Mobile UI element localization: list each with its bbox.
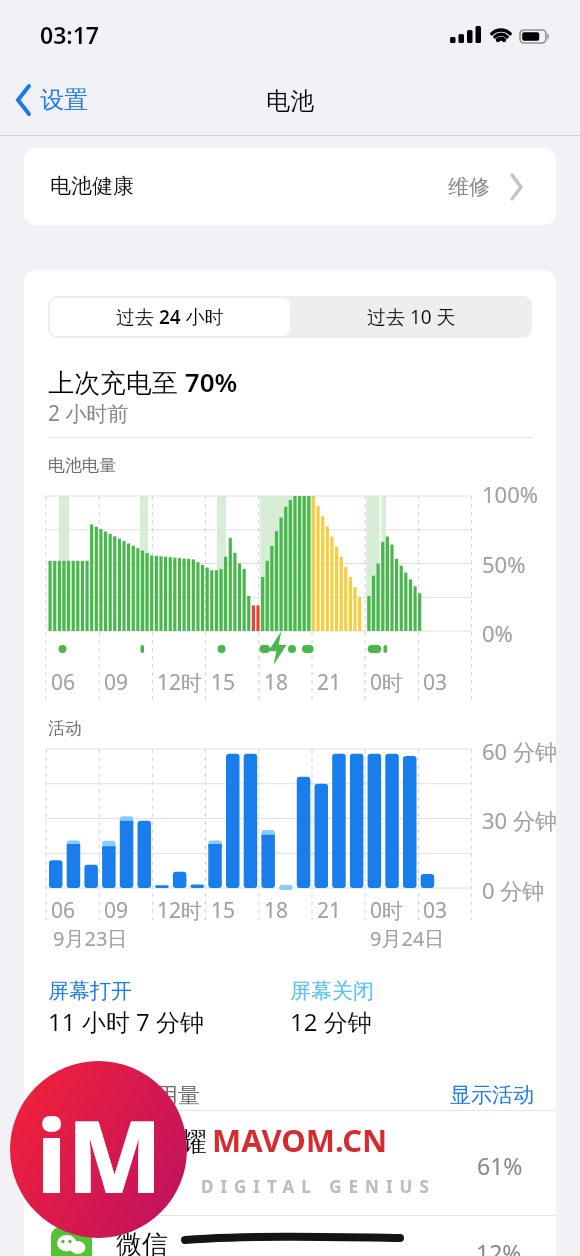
- staticText: 电池健康: [50, 173, 134, 199]
- button[interactable]: 微信: [24, 1216, 556, 1256]
- staticText: 21: [317, 896, 342, 925]
- staticText: DIGITAL GENIUS: [201, 1175, 436, 1198]
- staticText: 61%: [477, 1150, 523, 1181]
- staticText: 0%: [482, 618, 513, 648]
- staticText: 50%: [482, 549, 526, 579]
- staticText: 电池: [266, 86, 314, 116]
- staticText: 维修: [448, 174, 490, 200]
- staticText: MAVOM.CN: [212, 1119, 388, 1161]
- staticText: 100%: [482, 479, 539, 509]
- staticText: 03:17: [40, 19, 99, 50]
- staticText: 15: [211, 668, 236, 697]
- staticText: 微信: [116, 1228, 168, 1256]
- staticText: 9月23日: [53, 925, 128, 952]
- staticText: 06: [51, 896, 76, 925]
- staticText: 荣耀: [153, 1125, 207, 1159]
- staticText: 12时: [157, 896, 203, 925]
- staticText: 30 分钟: [482, 805, 556, 835]
- staticText: 0 分钟: [482, 875, 545, 905]
- button[interactable]: 显示活动: [450, 1082, 534, 1108]
- staticText: 60 分钟: [482, 736, 556, 766]
- staticText: 屏幕关闭: [290, 978, 374, 1004]
- staticText: 03: [423, 668, 448, 697]
- button[interactable]: 过去 10 天: [290, 296, 532, 338]
- staticText: 21: [317, 668, 342, 697]
- staticText: 电池电量: [48, 455, 116, 476]
- staticText: 03: [423, 896, 448, 925]
- button[interactable]: 设置: [14, 82, 88, 118]
- staticText: 12 分钟: [290, 1005, 372, 1038]
- staticText: 0时: [370, 668, 404, 697]
- staticText: 12%: [476, 1237, 522, 1256]
- staticText: 显示活动: [450, 1082, 534, 1108]
- staticText: 屏幕打开: [48, 978, 132, 1004]
- button[interactable]: 电池健康: [24, 148, 556, 225]
- staticText: 设置: [40, 85, 88, 115]
- button[interactable]: 过去 24 小时: [50, 298, 290, 336]
- button[interactable]: 荣耀: [24, 1115, 556, 1220]
- staticText: 09: [104, 668, 129, 697]
- staticText: 过去 24 小时: [116, 304, 224, 330]
- staticText: 15: [211, 896, 236, 925]
- staticText: 18: [264, 668, 289, 697]
- staticText: 18: [264, 896, 289, 925]
- staticText: 09: [104, 896, 129, 925]
- staticText: 活动: [48, 718, 82, 739]
- staticText: 11 小时 7 分钟: [48, 1005, 204, 1038]
- staticText: 9月24日: [370, 925, 445, 952]
- staticText: 上次充电至 70%: [48, 364, 238, 400]
- staticText: iM: [36, 1086, 163, 1222]
- staticText: 06: [51, 668, 76, 697]
- staticText: 2 小时前: [48, 399, 129, 428]
- staticText: 过去 10 天: [367, 304, 456, 330]
- staticText: 12时: [157, 668, 203, 697]
- staticText: 0时: [370, 896, 404, 925]
- staticText: 电池用量: [112, 1082, 200, 1110]
